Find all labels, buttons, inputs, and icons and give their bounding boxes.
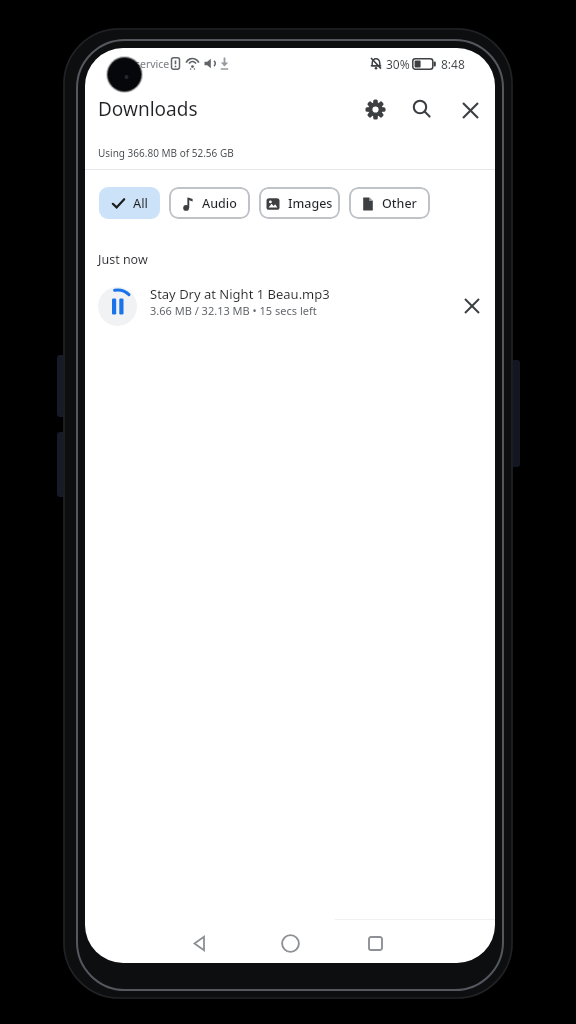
staticText: Other [382, 195, 417, 212]
button[interactable] [458, 98, 482, 122]
button[interactable] [360, 928, 390, 958]
button[interactable]: Images [259, 187, 340, 219]
button[interactable] [185, 928, 215, 958]
staticText: 8:48 [441, 56, 465, 72]
button[interactable] [275, 928, 305, 958]
staticText: Just now [98, 251, 148, 268]
button[interactable]: Audio [169, 187, 250, 219]
button[interactable]: Stay Dry at Night 1 Beau.mp3 [85, 279, 495, 333]
staticText: service [135, 57, 170, 71]
button[interactable]: All [99, 187, 160, 219]
staticText: All [133, 195, 148, 212]
staticText: Downloads [98, 96, 198, 122]
staticText: Using 366.80 MB of 52.56 GB [98, 146, 234, 160]
staticText: Audio [202, 195, 237, 212]
staticText: 30% [386, 56, 410, 72]
button[interactable]: Other [349, 187, 430, 219]
button[interactable] [461, 295, 483, 317]
staticText: 3.66 MB / 32.13 MB • 15 secs left [150, 303, 317, 318]
staticText: Stay Dry at Night 1 Beau.mp3 [150, 285, 330, 303]
staticText: Images [288, 195, 333, 212]
button[interactable] [363, 97, 387, 121]
button[interactable] [410, 97, 434, 121]
